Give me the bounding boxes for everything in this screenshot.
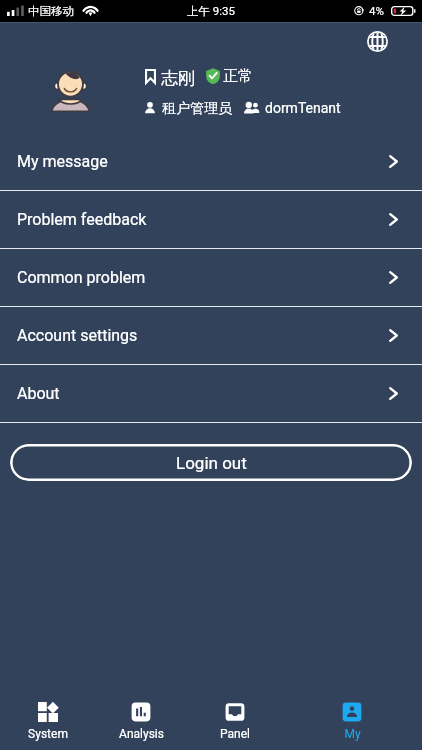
button[interactable]: Login out (10, 444, 412, 481)
button[interactable]: My (317, 698, 387, 750)
staticText: 租户管理员 (162, 100, 232, 115)
staticText: Common problem (17, 268, 146, 287)
staticText: 正常 (223, 67, 253, 85)
staticText: System (28, 727, 68, 741)
button[interactable]: Language (361, 25, 393, 57)
button[interactable]: Panel (200, 698, 270, 750)
button[interactable]: Account settings (0, 306, 422, 364)
staticText: 4% (369, 4, 384, 17)
staticText: Login out (176, 453, 247, 473)
button[interactable]: Common problem (0, 248, 422, 306)
button[interactable]: Problem feedback (0, 190, 422, 248)
staticText: dormTenant (265, 100, 341, 115)
button[interactable]: Analysis (106, 698, 176, 750)
staticText: 志刚 (161, 68, 195, 89)
button[interactable]: About (0, 364, 422, 422)
staticText: 中国移动 (28, 4, 74, 18)
staticText: 上午 9:35 (187, 4, 236, 18)
staticText: Analysis (119, 727, 164, 741)
button[interactable]: My message (0, 132, 422, 190)
staticText: Problem feedback (17, 210, 147, 229)
staticText: Account settings (17, 326, 138, 345)
button[interactable]: System (13, 698, 83, 750)
staticText: My (344, 727, 361, 741)
staticText: My message (17, 152, 108, 171)
staticText: Panel (220, 727, 250, 741)
staticText: About (17, 384, 60, 403)
